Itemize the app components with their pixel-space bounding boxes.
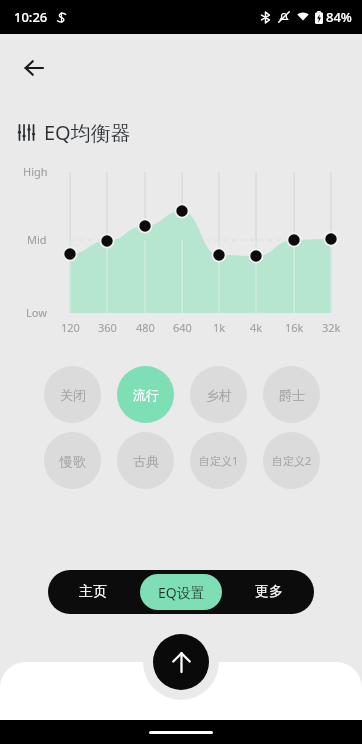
staticText: 乡村 (206, 387, 232, 403)
staticText: 更多 (255, 583, 283, 601)
staticText: EQ均衡器 (44, 119, 131, 146)
staticText: 4k (250, 320, 263, 335)
staticText: EQ设置 (158, 583, 205, 602)
staticText: 480 (136, 320, 155, 335)
staticText: 关闭 (60, 387, 86, 403)
button[interactable]: 流行 (117, 366, 174, 423)
staticText: 慢歌 (60, 453, 86, 469)
button[interactable]: 慢歌 (44, 432, 101, 489)
button[interactable]: 古典 (117, 432, 174, 489)
button[interactable]: EQ设置 (140, 574, 222, 610)
staticText: 主页 (79, 583, 107, 601)
staticText: 640 (173, 320, 192, 335)
staticText: 120 (61, 320, 80, 335)
staticText: 爵士 (279, 387, 305, 403)
staticText: 古典 (133, 453, 159, 469)
staticText: 自定义1 (199, 453, 239, 468)
staticText: 流行 (133, 387, 159, 403)
button[interactable]: Scroll to top (153, 634, 209, 690)
staticText: 1k (213, 320, 226, 335)
staticText: 16k (285, 320, 304, 335)
button[interactable]: 自定义2 (263, 432, 320, 489)
button[interactable]: 更多 (226, 574, 312, 610)
staticText: 自定义2 (272, 453, 312, 468)
button[interactable]: 自定义1 (190, 432, 247, 489)
button[interactable]: 爵士 (263, 366, 320, 423)
button[interactable]: Back (14, 48, 54, 88)
staticText: Low (26, 305, 47, 320)
button[interactable]: 关闭 (44, 366, 101, 423)
staticText: 84% (326, 8, 352, 26)
button[interactable]: 乡村 (190, 366, 247, 423)
button[interactable]: 主页 (50, 574, 136, 610)
staticText: 10:26 (14, 8, 48, 26)
staticText: 32k (322, 320, 341, 335)
staticText: Mid (27, 232, 47, 247)
staticText: 360 (98, 320, 117, 335)
staticText: High (23, 164, 48, 179)
